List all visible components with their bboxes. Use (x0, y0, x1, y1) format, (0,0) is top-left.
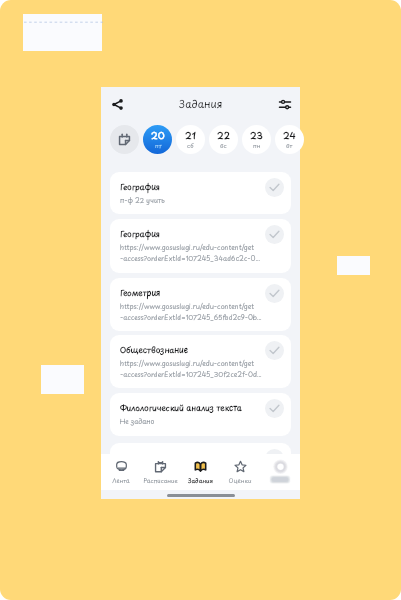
button[interactable]: Filter (274, 93, 296, 115)
staticText: Геометрия (120, 287, 161, 299)
staticText: 21 (185, 128, 196, 142)
button[interactable]: Share (106, 93, 128, 115)
staticText: Расписание (143, 476, 178, 485)
staticText: пт (155, 141, 162, 150)
button[interactable]: 24 (275, 125, 304, 154)
staticText: -access?orderExtId=107245_30f2ce2f-0dbc… (120, 369, 262, 379)
staticText: https://www.gosuslugi.ru/edu-content/get (120, 301, 255, 311)
staticText: сб (187, 141, 194, 150)
staticText: п-ф 22 учить (120, 195, 165, 205)
button[interactable]: Mark as done (265, 178, 284, 197)
button[interactable]: Филологический анализ текста (110, 393, 291, 436)
button[interactable]: Mark as done (265, 284, 284, 303)
button[interactable]: Расписание (140, 454, 180, 490)
button[interactable]: Mark as done (265, 399, 284, 418)
staticText: География (120, 228, 161, 240)
button[interactable]: 21 (176, 125, 205, 154)
staticText: Филологический анализ текста (120, 402, 242, 414)
staticText: -access?orderExtId=107245_65fbd2c9-0be… (120, 312, 262, 322)
staticText: https://www.gosuslugi.ru/edu-content/get (120, 358, 255, 368)
button[interactable]: География (110, 172, 291, 214)
button[interactable]: 22 (209, 125, 238, 154)
staticText: https://www.gosuslugi.ru/edu-content/get (120, 242, 255, 252)
button[interactable]: Оценки (220, 454, 260, 490)
button[interactable]: 20 (143, 125, 172, 154)
button[interactable]: Геометрия (110, 278, 291, 331)
button[interactable] (110, 443, 291, 483)
button[interactable]: Mark as done (265, 341, 284, 360)
staticText: вт (286, 141, 293, 150)
staticText: Задания (179, 96, 223, 112)
staticText: вс (220, 141, 227, 150)
staticText: 22 (217, 128, 230, 142)
button[interactable]: Лента (101, 454, 140, 490)
staticText: Оценки (228, 476, 252, 485)
button[interactable]: Задания (180, 454, 220, 490)
staticText: Не задано (120, 416, 155, 426)
button[interactable] (260, 454, 300, 490)
staticText: Лента (112, 476, 130, 485)
staticText: пн (253, 141, 261, 150)
staticText: -access?orderExtId=107245_34ad6c2c-08b… (120, 253, 262, 263)
button[interactable]: География (110, 219, 291, 273)
staticText: Обществознание (120, 344, 189, 356)
staticText: 23 (250, 128, 263, 142)
button[interactable]: Обществознание (110, 335, 291, 388)
button[interactable]: 23 (242, 125, 271, 154)
button[interactable]: Open calendar (110, 125, 139, 154)
staticText: 24 (283, 128, 296, 142)
button[interactable]: Mark as done (265, 225, 284, 244)
staticText: География (120, 181, 161, 193)
staticText: Задания (188, 476, 213, 485)
staticText: 20 (151, 128, 165, 142)
